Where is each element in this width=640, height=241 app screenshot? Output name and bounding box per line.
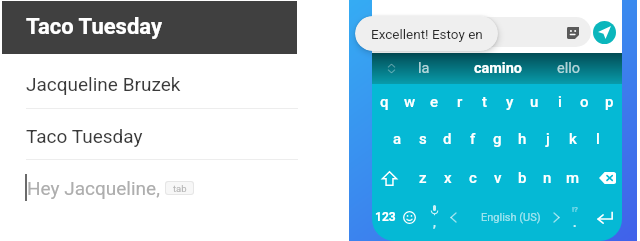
staticText: camino — [474, 60, 523, 77]
button[interactable]: g — [485, 121, 510, 157]
button[interactable]: v — [485, 160, 510, 196]
button[interactable]: i — [547, 84, 572, 120]
staticText: x — [444, 169, 452, 187]
staticText: Taco Tuesday — [26, 14, 162, 40]
button[interactable]: t — [472, 84, 497, 120]
button[interactable]: o — [572, 84, 597, 120]
staticText: . — [573, 216, 577, 230]
button[interactable]: a — [385, 121, 410, 157]
button[interactable]: c — [460, 160, 485, 196]
staticText: r — [457, 93, 463, 111]
staticText: p — [605, 93, 614, 111]
staticText: v — [494, 169, 502, 187]
staticText: tab — [173, 183, 187, 194]
staticText: f — [470, 130, 476, 148]
button[interactable]: la — [390, 53, 458, 84]
button[interactable]: k — [560, 121, 585, 157]
button[interactable]: ello — [535, 53, 603, 84]
button[interactable]: n — [535, 160, 560, 196]
button[interactable]: Voice input and comma — [422, 199, 447, 235]
staticText: la — [418, 60, 430, 77]
button[interactable]: Jacqueline Bruzek — [0, 60, 320, 107]
staticText: u — [530, 93, 539, 111]
staticText: ello — [557, 60, 581, 77]
button[interactable]: Taco Tuesday — [0, 112, 320, 159]
button[interactable]: 123 — [372, 199, 398, 235]
staticText: , — [433, 216, 436, 230]
button[interactable]: Hey Jacqueline, — [0, 165, 320, 210]
button[interactable]: u — [522, 84, 547, 120]
staticText: t — [482, 93, 487, 111]
staticText: d — [443, 130, 452, 148]
staticText: i — [558, 93, 562, 111]
button[interactable]: q — [372, 84, 397, 120]
button[interactable]: j — [535, 121, 560, 157]
staticText: l — [596, 130, 600, 148]
staticText: m — [566, 169, 580, 187]
button[interactable]: f — [460, 121, 485, 157]
button[interactable]: y — [497, 84, 522, 120]
staticText: a — [393, 130, 402, 148]
staticText: g — [493, 130, 502, 148]
button[interactable]: Excellent! Estoy en — [355, 16, 498, 51]
staticText: Hey Jacqueline, — [27, 177, 165, 199]
button[interactable]: e — [422, 84, 447, 120]
staticText: e — [430, 93, 439, 111]
staticText: j — [546, 130, 550, 148]
staticText: c — [469, 169, 477, 187]
staticText: k — [569, 130, 577, 148]
staticText: Jacqueline Bruzek — [26, 73, 181, 95]
button[interactable]: h — [510, 121, 535, 157]
staticText: h — [518, 130, 527, 148]
button[interactable]: Emoji — [392, 199, 426, 235]
staticText: b — [518, 169, 527, 187]
button[interactable]: d — [435, 121, 460, 157]
button[interactable]: z — [410, 160, 435, 196]
staticText: !? — [572, 205, 578, 214]
button[interactable]: p — [597, 84, 622, 120]
button[interactable]: Expand suggestions — [380, 53, 402, 84]
staticText: s — [419, 130, 427, 148]
button[interactable]: Previous language — [444, 199, 462, 235]
button[interactable]: b — [510, 160, 535, 196]
button[interactable]: Send — [593, 21, 616, 44]
button[interactable]: w — [397, 84, 422, 120]
staticText: z — [419, 169, 427, 187]
button[interactable]: Punctuation and period — [562, 199, 587, 235]
staticText: n — [543, 169, 552, 187]
button[interactable]: x — [435, 160, 460, 196]
button[interactable]: Stickers — [567, 27, 579, 39]
button[interactable]: r — [447, 84, 472, 120]
button[interactable]: camino — [464, 53, 532, 84]
staticText: English (US) — [481, 211, 541, 224]
staticText: o — [580, 93, 589, 111]
staticText: y — [506, 93, 514, 111]
staticText: 123 — [375, 210, 396, 224]
button[interactable]: l — [585, 121, 610, 157]
staticText: q — [380, 93, 389, 111]
button[interactable]: s — [410, 121, 435, 157]
staticText: Taco Tuesday — [26, 125, 143, 147]
button[interactable]: Next language — [547, 199, 565, 235]
button[interactable]: m — [560, 160, 585, 196]
button[interactable]: Shift — [372, 160, 406, 196]
staticText: Excellent! Estoy en — [371, 26, 483, 42]
staticText: w — [404, 93, 416, 111]
button[interactable]: Enter — [587, 199, 621, 235]
button[interactable]: Backspace — [590, 160, 622, 196]
button[interactable]: English (US) — [462, 199, 560, 235]
button[interactable]: Taco Tuesday — [2, 1, 297, 54]
button[interactable] — [462, 17, 591, 47]
